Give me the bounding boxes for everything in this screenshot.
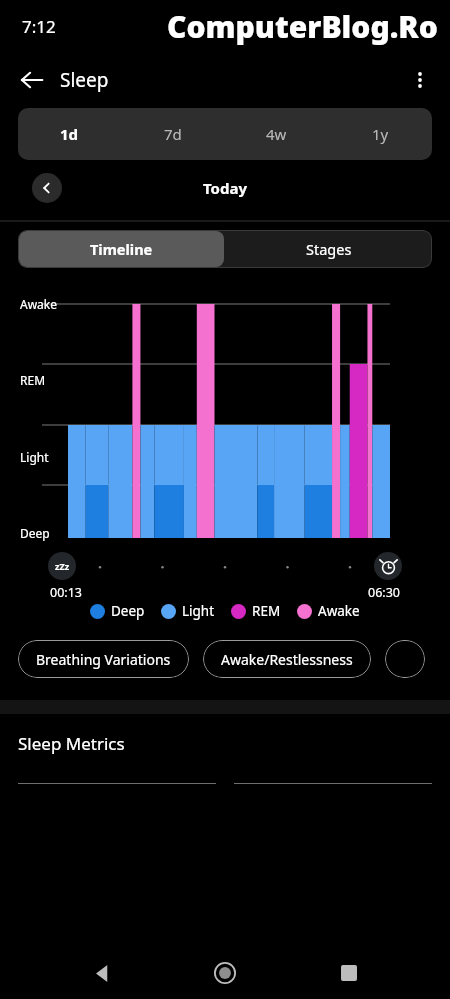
staticText: 00:13 <box>50 584 82 601</box>
staticText: 4w <box>266 124 287 144</box>
staticText: Timeline <box>90 239 153 259</box>
button[interactable]: 4w <box>224 108 328 160</box>
staticText: Awake <box>20 296 58 312</box>
staticText: Sleep <box>60 67 109 93</box>
staticText: Light <box>20 449 49 465</box>
staticText: Sleep Metrics <box>18 732 125 755</box>
button[interactable]: 1d <box>18 108 121 160</box>
button[interactable]: 7d <box>121 108 224 160</box>
button[interactable]: More <box>385 640 425 678</box>
staticText: Deep <box>111 602 145 620</box>
staticText: Today <box>203 178 248 198</box>
staticText: Stages <box>306 239 352 259</box>
staticText: zZz <box>55 560 70 572</box>
button[interactable]: Previous day <box>32 173 62 203</box>
staticText: 7d <box>164 124 182 144</box>
button[interactable]: Back <box>10 58 54 102</box>
button[interactable]: Awake <box>297 602 360 620</box>
other: Sleep start <box>48 552 76 580</box>
button[interactable]: 1y <box>328 108 432 160</box>
staticText: Deep <box>20 525 50 541</box>
staticText: REM <box>20 372 46 388</box>
staticText: Awake <box>318 602 360 620</box>
staticText: Light <box>182 602 215 620</box>
button[interactable]: More options <box>398 58 442 102</box>
button[interactable]: Light <box>161 602 215 620</box>
button[interactable]: Recents <box>327 951 371 995</box>
button[interactable]: Breathing Variations <box>18 640 189 678</box>
other: Alarm <box>374 552 402 580</box>
button[interactable]: REM <box>231 602 281 620</box>
button[interactable]: Deep <box>90 602 145 620</box>
staticText: 1y <box>372 124 389 144</box>
button[interactable]: Awake/Restlessness <box>203 640 371 678</box>
staticText: 7:12 <box>22 15 56 38</box>
staticText: REM <box>252 602 281 620</box>
staticText: Awake/Restlessness <box>221 650 353 669</box>
staticText: 06:30 <box>368 584 400 601</box>
staticText: Breathing Variations <box>36 650 171 669</box>
staticText: ComputerBlog.Ro <box>167 6 438 47</box>
button[interactable]: Home <box>203 951 247 995</box>
button[interactable]: Timeline <box>19 231 224 267</box>
button[interactable]: Back <box>80 951 124 995</box>
staticText: 1d <box>60 124 79 144</box>
button[interactable]: Stages <box>225 230 432 268</box>
